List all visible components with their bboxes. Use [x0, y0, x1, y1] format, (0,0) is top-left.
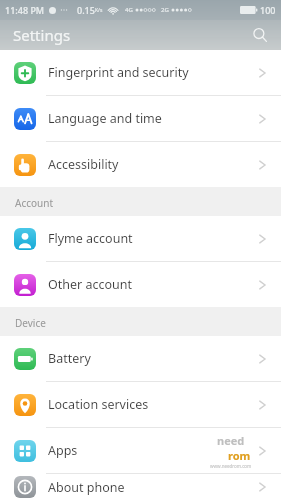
staticText: Battery: [48, 350, 91, 367]
staticText: K/s: [95, 7, 103, 14]
staticText: 100: [260, 4, 276, 16]
staticText: Fingerprint and security: [48, 64, 189, 81]
button[interactable]: Accessibility: [0, 142, 281, 187]
button[interactable]: Battery: [0, 336, 281, 381]
staticText: Account: [15, 196, 54, 210]
button[interactable]: Apps: [0, 428, 281, 473]
staticText: Language and time: [48, 110, 162, 127]
button[interactable]: Language and time: [0, 96, 281, 141]
staticText: Device: [15, 316, 46, 330]
staticText: 0.15: [77, 4, 95, 16]
staticText: Other account: [48, 276, 133, 293]
button[interactable]: Location services: [0, 382, 281, 427]
staticText: need: [217, 433, 245, 448]
staticText: Accessibility: [48, 156, 119, 173]
button[interactable]: Flyme account: [0, 216, 281, 261]
staticText: Settings: [13, 25, 71, 45]
staticText: 4G: [125, 6, 133, 14]
staticText: Apps: [48, 442, 78, 459]
staticText: rom: [228, 448, 251, 463]
button[interactable]: Search: [247, 22, 273, 48]
button[interactable]: Other account: [0, 262, 281, 307]
button[interactable]: Fingerprint and security: [0, 50, 281, 95]
staticText: www.needrom.com: [210, 463, 252, 469]
staticText: Location services: [48, 396, 149, 413]
staticText: About phone: [48, 479, 125, 496]
button[interactable]: About phone: [0, 474, 281, 500]
staticText: 11:48 PM: [5, 4, 45, 16]
staticText: Flyme account: [48, 230, 133, 247]
staticText: 2G: [161, 6, 169, 14]
